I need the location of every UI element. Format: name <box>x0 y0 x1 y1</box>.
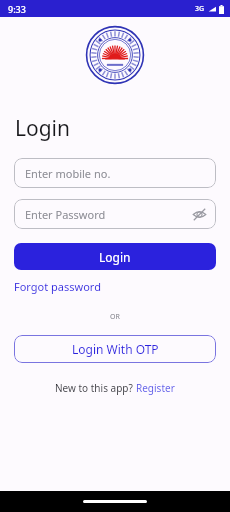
staticText: Login <box>99 249 131 265</box>
staticText: Enter mobile no. <box>25 166 111 181</box>
staticText: 9:33 <box>8 3 26 15</box>
staticText: OR <box>110 312 120 322</box>
button[interactable]: Enter mobile no. <box>14 158 216 188</box>
button[interactable]: Show password <box>189 204 209 224</box>
button[interactable]: Register <box>136 381 175 395</box>
button[interactable]: Enter Password <box>14 199 216 229</box>
staticText: Forgot password <box>14 279 101 294</box>
staticText: Register <box>136 381 175 395</box>
staticText: Enter Password <box>25 207 106 222</box>
button[interactable]: Forgot password <box>14 278 101 295</box>
button[interactable]: Login <box>14 243 216 270</box>
staticText: Login <box>15 114 71 143</box>
staticText: Login With OTP <box>72 341 159 357</box>
button[interactable]: Login With OTP <box>14 335 216 363</box>
staticText: New to this app? <box>55 381 136 395</box>
staticText: 3G <box>195 4 205 14</box>
